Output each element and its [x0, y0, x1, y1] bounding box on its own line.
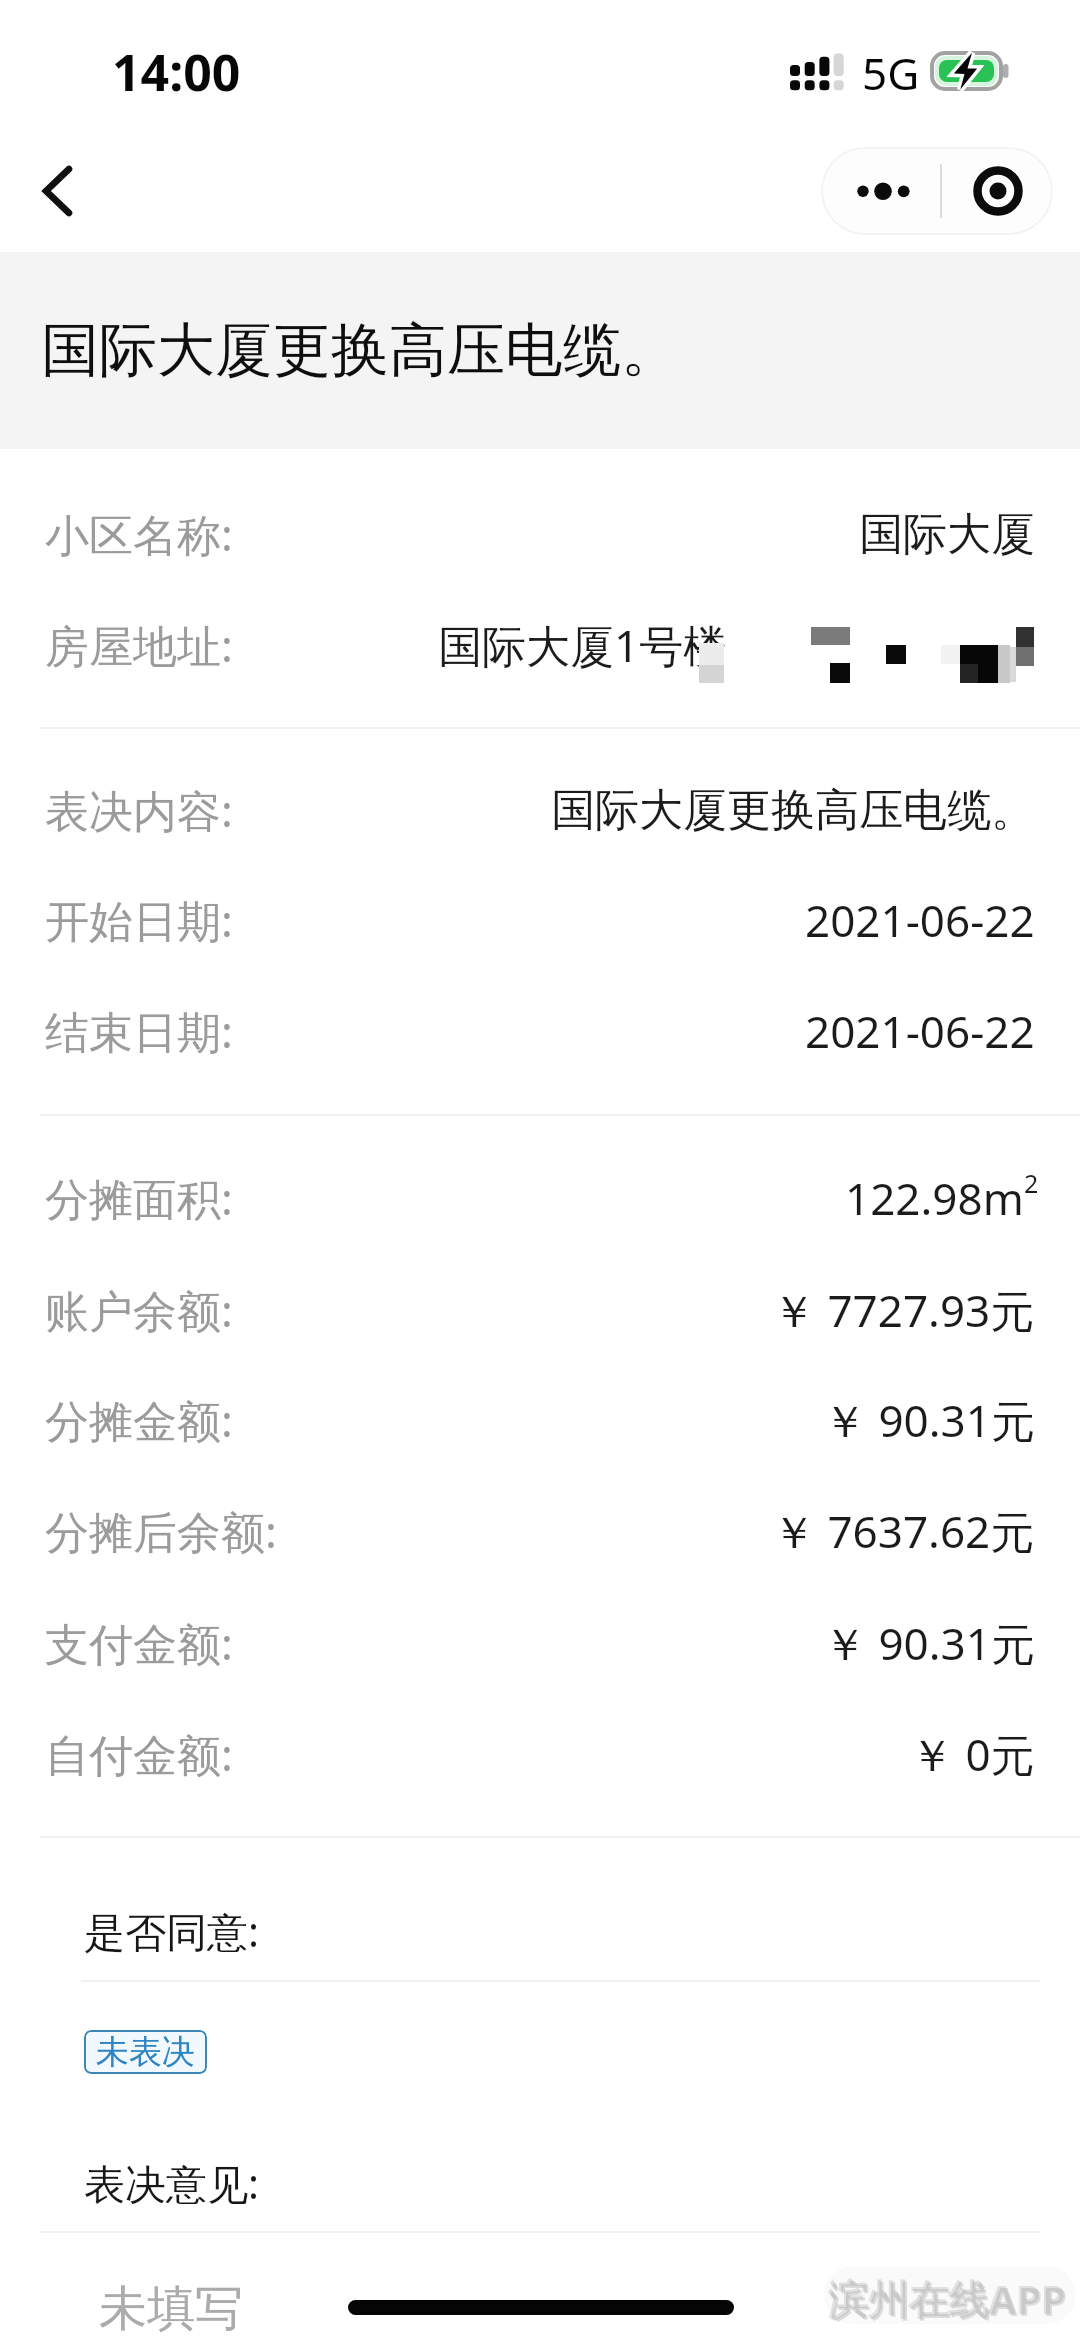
staticText: 表决内容:: [45, 780, 233, 840]
button[interactable]: 账户余额:: [0, 1255, 1080, 1365]
staticText: 滨州在线APP: [828, 2271, 1066, 2326]
button[interactable]: Back: [20, 145, 116, 237]
staticText: 分摊面积:: [45, 1168, 233, 1228]
staticText: 分摊金额:: [45, 1390, 233, 1450]
staticText: ￥ 0元: [910, 1724, 1035, 1784]
button[interactable]: 开始日期:: [0, 865, 1080, 975]
staticText: 122.98m: [845, 1168, 1024, 1228]
staticText: 国际大厦: [859, 507, 1035, 562]
button[interactable]: 表决内容:: [0, 755, 1080, 865]
button[interactable]: 房屋地址:: [0, 590, 1080, 700]
staticText: 国际大厦更换高压电缆。: [551, 783, 1035, 838]
staticText: 2021-06-22: [805, 890, 1035, 950]
staticText: 滨州在线APP: [830, 2273, 1068, 2328]
staticText: 5G: [862, 43, 920, 103]
button[interactable]: 支付金额:: [0, 1588, 1080, 1698]
staticText: ￥ 90.31元: [823, 1613, 1035, 1673]
staticText: 国际大厦更换高压电缆。: [41, 314, 679, 387]
button[interactable]: 小区名称:: [0, 479, 1080, 589]
staticText: 未填写: [99, 2279, 243, 2337]
button[interactable]: Close mini program: [942, 147, 1053, 235]
staticText: 开始日期:: [45, 890, 233, 950]
staticText: 2021-06-22: [805, 1001, 1035, 1061]
staticText: ￥ 7637.62元: [772, 1501, 1035, 1561]
staticText: 账户余额:: [45, 1280, 233, 1340]
staticText: 小区名称:: [45, 504, 233, 564]
staticText: 14:00: [112, 38, 241, 106]
button[interactable]: 分摊金额:: [0, 1365, 1080, 1475]
staticText: ￥ 7727.93元: [772, 1280, 1035, 1340]
button[interactable]: 未表决: [84, 2030, 207, 2074]
staticText: 表决意见:: [84, 2155, 259, 2211]
button[interactable]: 分摊后余额:: [0, 1476, 1080, 1586]
staticText: 是否同意:: [84, 1903, 259, 1959]
button[interactable]: 自付金额:: [0, 1699, 1080, 1809]
button[interactable]: 分摊面积:: [0, 1143, 1080, 1253]
button[interactable]: More options: [821, 147, 940, 235]
staticText: 自付金额:: [45, 1724, 233, 1784]
staticText: 国际大厦1号楼: [438, 615, 728, 675]
staticText: 支付金额:: [45, 1613, 233, 1673]
staticText: 结束日期:: [45, 1001, 233, 1061]
staticText: 分摊后余额:: [45, 1501, 277, 1561]
staticText: 2: [1024, 1166, 1039, 1200]
button[interactable]: 结束日期:: [0, 976, 1080, 1086]
staticText: 未表决: [96, 2031, 195, 2073]
staticText: 房屋地址:: [45, 615, 233, 675]
staticText: ￥ 90.31元: [823, 1390, 1035, 1450]
